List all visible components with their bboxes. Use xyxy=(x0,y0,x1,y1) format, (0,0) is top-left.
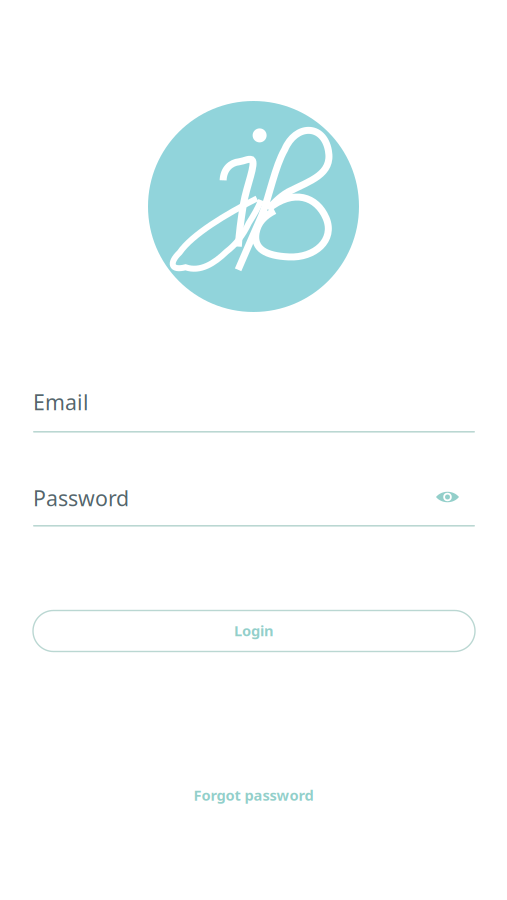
button[interactable]: Forgot password xyxy=(173,782,333,808)
staticText: Email xyxy=(33,388,89,416)
staticText: Password xyxy=(33,484,129,512)
staticText: Login xyxy=(234,621,274,640)
button[interactable]: Password xyxy=(33,473,475,517)
button[interactable]: Email xyxy=(33,377,475,421)
button[interactable]: Login xyxy=(33,610,475,651)
button[interactable]: Show password xyxy=(429,481,465,513)
staticText: Forgot password xyxy=(193,785,313,805)
